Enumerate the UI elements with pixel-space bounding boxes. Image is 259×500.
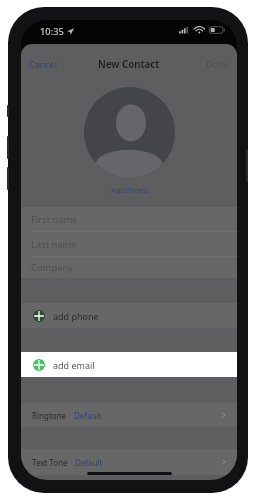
button[interactable]: Add contact photo xyxy=(84,87,175,178)
staticText: 10:35 xyxy=(40,25,64,38)
staticText: Default xyxy=(75,457,103,468)
button[interactable]: Cancel xyxy=(21,52,66,76)
staticText: add phone xyxy=(53,310,99,322)
staticText: Text Tone xyxy=(32,457,68,468)
staticText: Add Photo xyxy=(111,185,148,195)
staticText: Last name xyxy=(31,238,77,251)
staticText: Done xyxy=(206,58,229,70)
staticText: Default xyxy=(74,410,102,421)
staticText: Ringtone xyxy=(32,410,67,421)
button[interactable]: Add Photo xyxy=(105,183,154,197)
staticText: Cancel xyxy=(29,58,58,70)
button[interactable]: add email xyxy=(21,352,237,377)
button[interactable]: add phone xyxy=(21,303,237,328)
staticText: Company xyxy=(31,261,74,274)
button[interactable]: Ringtone xyxy=(21,403,237,427)
staticText: New Contact xyxy=(98,58,160,71)
staticText: add email xyxy=(53,359,95,371)
staticText: First name xyxy=(31,213,78,226)
button[interactable]: Text Tone xyxy=(21,449,237,475)
